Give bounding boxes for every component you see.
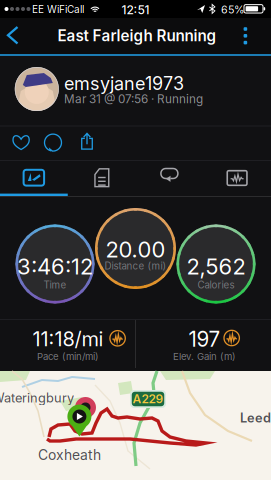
button[interactable]: Comment <box>37 126 69 158</box>
button[interactable]: Back <box>0 18 34 54</box>
staticText: Wateringbury <box>0 390 74 405</box>
button[interactable]: Profile photo <box>15 67 59 111</box>
staticText: 20.00 <box>105 236 165 263</box>
staticText: 197 <box>188 327 220 352</box>
staticText: Time <box>43 279 66 291</box>
staticText: 3:46:12 <box>17 253 93 280</box>
staticText: Elev. Gain (m) <box>173 351 236 362</box>
button[interactable]: Details <box>68 160 136 196</box>
staticText: EE WiFiCall <box>32 3 84 15</box>
staticText: 11:18/mi <box>32 327 103 351</box>
button[interactable]: Like <box>5 126 37 158</box>
staticText: 65% <box>221 3 244 16</box>
button[interactable]: Laps <box>135 160 203 196</box>
staticText: Mar 31 @ 07:56 · Running <box>64 92 203 106</box>
staticText: Calories <box>197 279 234 291</box>
staticText: East Farleigh Running <box>57 26 216 45</box>
staticText: Pace (min/mi) <box>37 351 99 362</box>
button[interactable]: Share <box>70 126 102 158</box>
button[interactable]: Charts <box>203 160 271 196</box>
staticText: Leeds <box>240 410 271 425</box>
staticText: A229 <box>132 392 163 406</box>
staticText: Distance (mi) <box>104 260 166 272</box>
staticText: Coxheath <box>38 446 101 463</box>
button[interactable]: More options <box>229 18 265 54</box>
staticText: 2,562 <box>186 253 245 280</box>
staticText: 12:51 <box>121 3 149 17</box>
button[interactable]: Summary <box>0 160 68 196</box>
staticText: emsyjane1973 <box>64 72 184 94</box>
